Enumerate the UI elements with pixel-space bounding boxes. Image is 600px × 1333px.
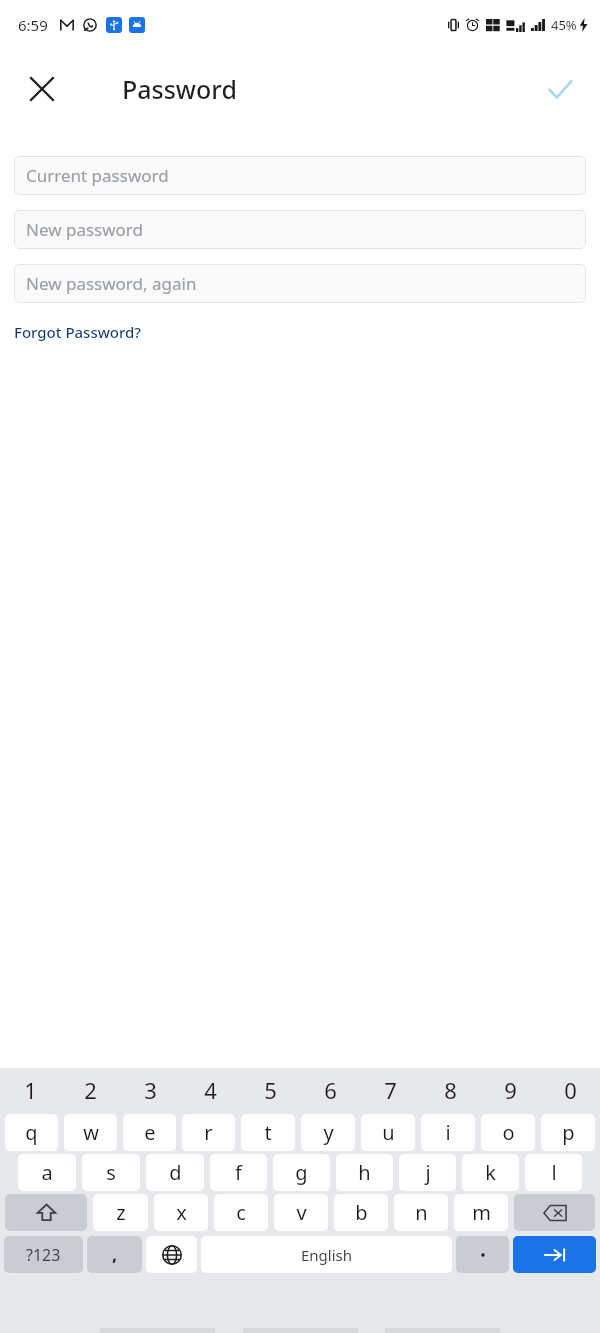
button[interactable]: k bbox=[462, 1154, 519, 1191]
staticText: 0 bbox=[564, 1075, 577, 1105]
button[interactable]: 1 bbox=[0, 1068, 60, 1112]
staticText: c bbox=[236, 1199, 246, 1226]
staticText: r bbox=[204, 1119, 213, 1146]
button[interactable]: w bbox=[64, 1114, 117, 1151]
staticText: n bbox=[415, 1199, 428, 1226]
button[interactable]: o bbox=[481, 1114, 535, 1151]
button[interactable]: Close bbox=[14, 61, 70, 117]
staticText: , bbox=[112, 1242, 118, 1267]
staticText: 2 bbox=[84, 1075, 97, 1105]
button[interactable]: z bbox=[93, 1194, 148, 1231]
button[interactable]: h bbox=[336, 1154, 393, 1191]
button[interactable]: y bbox=[301, 1114, 355, 1151]
button[interactable]: ?123 bbox=[4, 1236, 83, 1273]
staticText: 5 bbox=[264, 1075, 277, 1105]
button[interactable]: 9 bbox=[480, 1068, 540, 1112]
button[interactable]: 3 bbox=[120, 1068, 180, 1112]
staticText: z bbox=[116, 1199, 126, 1226]
button[interactable]: j bbox=[399, 1154, 456, 1191]
staticText: Forgot Password? bbox=[14, 322, 142, 342]
button[interactable]: New password, again bbox=[14, 264, 586, 303]
button[interactable]: 2 bbox=[60, 1068, 120, 1112]
staticText: 1 bbox=[24, 1075, 37, 1105]
button[interactable]: g bbox=[273, 1154, 330, 1191]
button[interactable]: Shift bbox=[5, 1194, 87, 1231]
staticText: u bbox=[382, 1119, 395, 1146]
button[interactable]: e bbox=[123, 1114, 176, 1151]
button[interactable]: Enter bbox=[513, 1236, 596, 1273]
staticText: y bbox=[323, 1119, 334, 1146]
staticText: w bbox=[83, 1119, 99, 1146]
button[interactable]: Forgot Password? bbox=[14, 320, 142, 344]
button[interactable]: Change keyboard language bbox=[146, 1236, 197, 1273]
button[interactable]: m bbox=[454, 1194, 508, 1231]
button[interactable]: Save bbox=[532, 61, 588, 117]
button[interactable]: English bbox=[201, 1236, 452, 1273]
button[interactable]: l bbox=[525, 1154, 582, 1191]
button[interactable]: i bbox=[421, 1114, 475, 1151]
button[interactable]: f bbox=[210, 1154, 267, 1191]
staticText: 3 bbox=[144, 1075, 157, 1105]
staticText: d bbox=[169, 1159, 182, 1186]
staticText: t bbox=[264, 1119, 272, 1146]
button[interactable]: r bbox=[182, 1114, 235, 1151]
button[interactable]: New password bbox=[14, 210, 586, 249]
button[interactable]: a bbox=[18, 1154, 76, 1191]
button[interactable] bbox=[456, 1236, 509, 1273]
staticText: Current password bbox=[26, 164, 169, 187]
staticText: g bbox=[295, 1159, 308, 1186]
button[interactable]: Current password bbox=[14, 156, 586, 195]
button[interactable]: 5 bbox=[240, 1068, 300, 1112]
button[interactable]: b bbox=[334, 1194, 388, 1231]
staticText: x bbox=[176, 1199, 187, 1226]
staticText: q bbox=[25, 1119, 38, 1146]
button[interactable]: u bbox=[361, 1114, 415, 1151]
staticText: j bbox=[425, 1159, 431, 1186]
staticText: m bbox=[472, 1199, 491, 1226]
staticText: a bbox=[41, 1159, 53, 1186]
staticText: s bbox=[106, 1159, 116, 1186]
staticText: p bbox=[562, 1119, 575, 1146]
button[interactable]: x bbox=[154, 1194, 208, 1231]
staticText: 9 bbox=[504, 1075, 517, 1105]
staticText: k bbox=[485, 1159, 496, 1186]
staticText: v bbox=[296, 1199, 307, 1226]
button[interactable]: s bbox=[82, 1154, 140, 1191]
button[interactable]: 0 bbox=[540, 1068, 600, 1112]
staticText: 6:59 bbox=[18, 15, 48, 35]
staticText: i bbox=[445, 1119, 451, 1146]
staticText: ?123 bbox=[26, 1244, 61, 1266]
staticText: e bbox=[144, 1119, 156, 1146]
button[interactable]: q bbox=[5, 1114, 58, 1151]
staticText: 4 bbox=[204, 1075, 217, 1105]
button[interactable]: 6 bbox=[300, 1068, 360, 1112]
staticText: h bbox=[358, 1159, 371, 1186]
staticText: 6 bbox=[324, 1075, 337, 1105]
button[interactable]: n bbox=[394, 1194, 448, 1231]
button[interactable]: Backspace bbox=[514, 1194, 595, 1231]
staticText: f bbox=[235, 1159, 242, 1186]
staticText: 45% bbox=[551, 16, 577, 34]
staticText: 8 bbox=[444, 1075, 457, 1105]
button[interactable]: v bbox=[274, 1194, 328, 1231]
staticText: New password bbox=[26, 218, 144, 241]
button[interactable]: 7 bbox=[360, 1068, 420, 1112]
button[interactable]: d bbox=[146, 1154, 204, 1191]
staticText: 7 bbox=[384, 1075, 397, 1105]
button[interactable]: 4 bbox=[180, 1068, 240, 1112]
staticText: New password, again bbox=[26, 272, 197, 295]
staticText: l bbox=[551, 1159, 557, 1186]
button[interactable]: t bbox=[241, 1114, 295, 1151]
button[interactable]: , bbox=[87, 1236, 142, 1273]
button[interactable]: p bbox=[541, 1114, 595, 1151]
button[interactable]: 8 bbox=[420, 1068, 480, 1112]
staticText: o bbox=[502, 1119, 515, 1146]
staticText: b bbox=[355, 1199, 368, 1226]
staticText: English bbox=[301, 1245, 353, 1265]
button[interactable]: c bbox=[214, 1194, 268, 1231]
staticText: Password bbox=[122, 72, 237, 106]
